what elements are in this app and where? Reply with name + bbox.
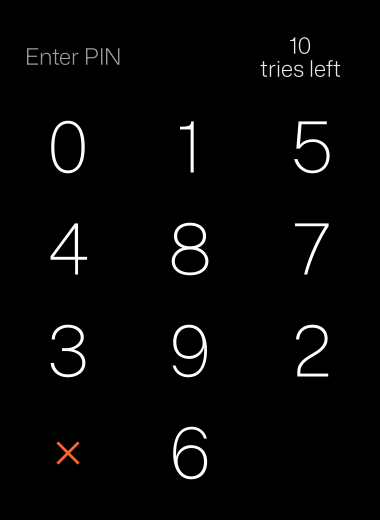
staticText: tries left [260, 52, 341, 84]
staticText: 9 [169, 309, 211, 392]
button[interactable]: 9 [129, 300, 251, 402]
button[interactable]: 6 [129, 402, 251, 504]
button[interactable]: Delete [7, 402, 129, 504]
staticText: 5 [290, 105, 333, 188]
staticText: 6 [169, 411, 210, 494]
staticText: 8 [168, 207, 212, 290]
button[interactable]: 1 [129, 96, 251, 198]
button[interactable]: 5 [251, 96, 373, 198]
button[interactable]: 4 [7, 198, 129, 300]
staticText: 2 [292, 309, 331, 392]
button[interactable]: 2 [251, 300, 373, 402]
staticText: 4 [47, 207, 89, 290]
button[interactable]: 3 [7, 300, 129, 402]
button[interactable]: 8 [129, 198, 251, 300]
staticText: 1 [176, 105, 203, 188]
button[interactable]: 7 [251, 198, 373, 300]
staticText: 7 [291, 207, 332, 290]
staticText: 3 [47, 309, 89, 392]
staticText: 10 [289, 29, 311, 61]
button[interactable]: 0 [7, 96, 129, 198]
staticText: 0 [47, 105, 88, 188]
staticText: Enter PIN [25, 40, 121, 72]
